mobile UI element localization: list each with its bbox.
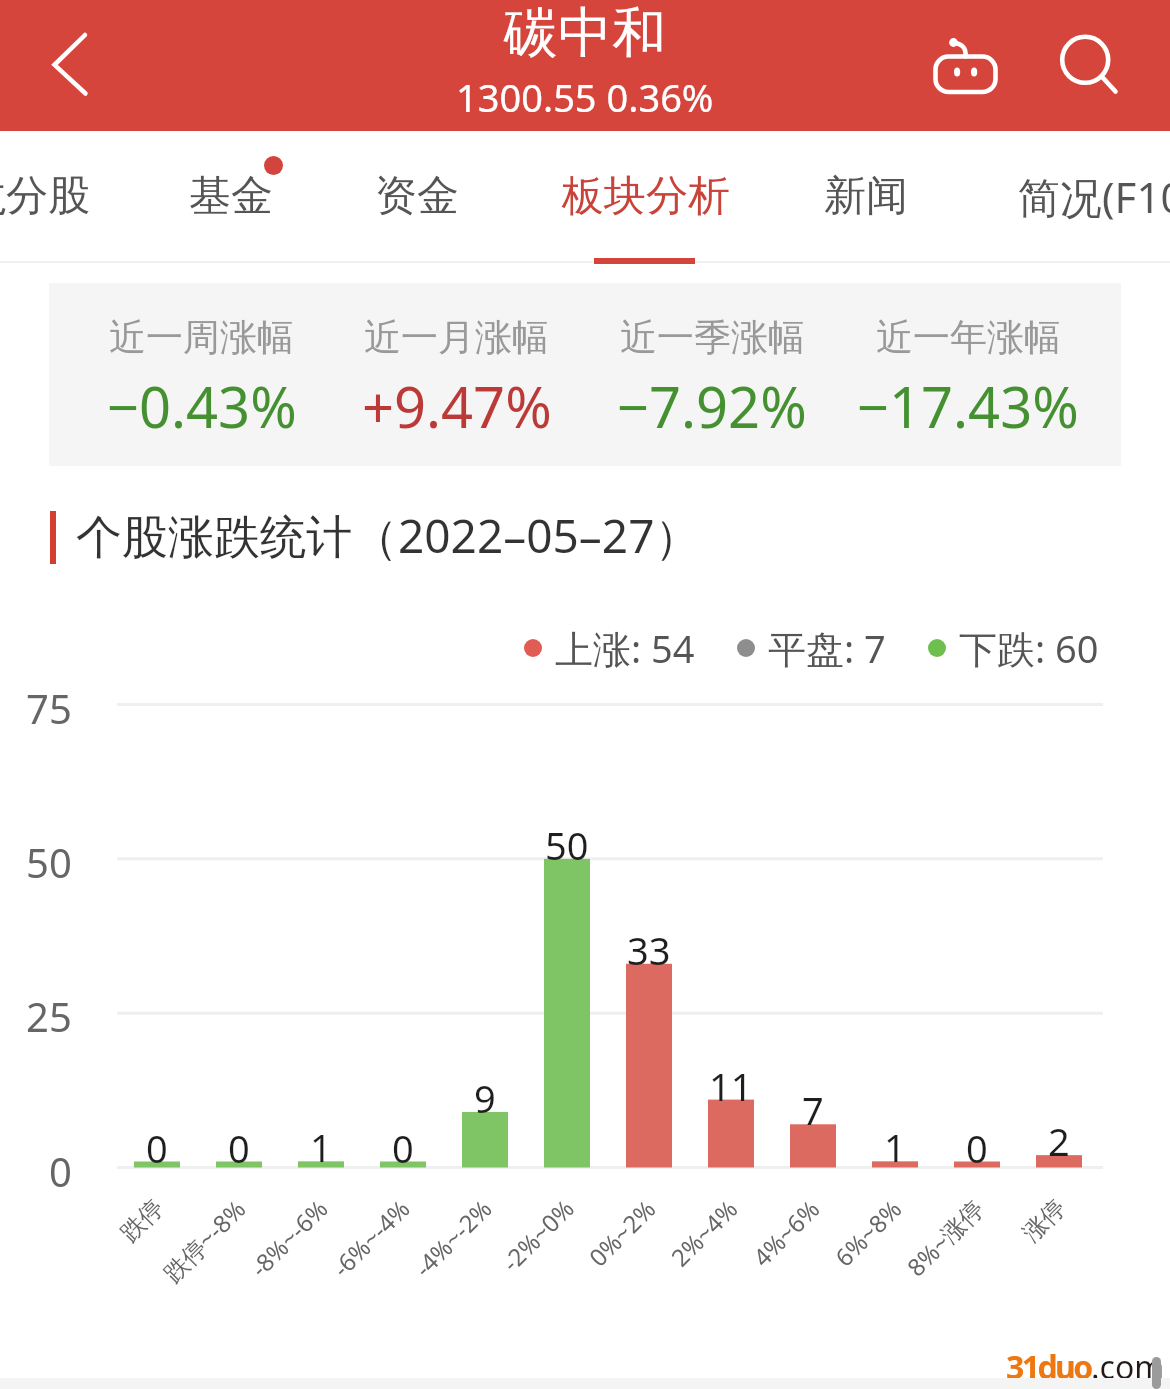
button[interactable]: 基金: [189, 131, 273, 262]
staticText: 板块分析: [562, 170, 730, 223]
button[interactable]: 龙分股: [0, 131, 90, 262]
staticText: 平盘: 7: [768, 622, 886, 674]
staticText: 近一月涨幅: [364, 314, 549, 361]
staticText: 龙分股: [0, 170, 90, 223]
staticText: 31duo: [1006, 1345, 1091, 1389]
staticText: −17.43%: [857, 368, 1079, 444]
staticText: 近一周涨幅: [109, 314, 294, 361]
button[interactable]: 资金: [375, 131, 459, 262]
button[interactable]: 新闻: [824, 131, 908, 262]
staticText: 碳中和: [504, 0, 666, 67]
staticText: .com: [1091, 1345, 1165, 1389]
button[interactable]: Search: [1043, 21, 1143, 121]
staticText: 资金: [375, 170, 459, 223]
staticText: 1300.55 0.36%: [456, 71, 714, 123]
staticText: +9.47%: [362, 368, 552, 444]
staticText: 近一年涨幅: [876, 314, 1061, 361]
button[interactable]: 板块分析: [562, 131, 730, 262]
staticText: 上涨: 54: [555, 622, 695, 674]
staticText: 下跌: 60: [959, 622, 1099, 674]
staticText: 新闻: [824, 170, 908, 223]
staticText: −0.43%: [107, 368, 297, 444]
staticText: 基金: [189, 170, 273, 223]
button[interactable]: AI assistant: [912, 10, 1022, 120]
staticText: 个股涨跌统计（2022–05–27）: [76, 504, 701, 567]
button[interactable]: 简况(F10): [961, 131, 1170, 262]
staticText: −7.92%: [617, 368, 807, 444]
staticText: 近一季涨幅: [620, 314, 805, 361]
staticText: 简况(F10): [1018, 168, 1170, 225]
button[interactable]: Back: [15, 10, 125, 120]
